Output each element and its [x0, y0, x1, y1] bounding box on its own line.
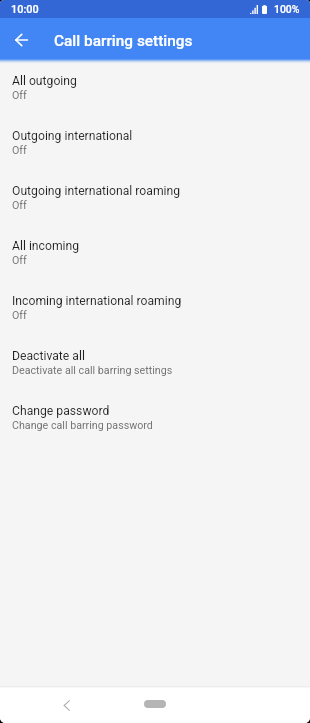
button[interactable]: Outgoing international roaming: [0, 170, 310, 225]
staticText: All incoming: [12, 239, 80, 253]
staticText: Deactivate all: [12, 349, 85, 363]
staticText: Deactivate all call barring settings: [12, 364, 173, 377]
button[interactable]: Home: [144, 700, 166, 708]
staticText: 100%: [274, 3, 300, 15]
staticText: Change call barring password: [12, 419, 153, 432]
button[interactable]: Outgoing international: [0, 115, 310, 170]
button[interactable]: All outgoing: [0, 60, 310, 115]
staticText: Off: [12, 199, 27, 212]
staticText: Incoming international roaming: [12, 294, 182, 308]
staticText: Off: [12, 309, 27, 322]
staticText: Change password: [12, 404, 110, 418]
staticText: 10:00: [11, 3, 39, 16]
staticText: Off: [12, 89, 27, 102]
staticText: Outgoing international roaming: [12, 184, 181, 198]
button[interactable]: Deactivate all: [0, 335, 310, 390]
button[interactable]: Incoming international roaming: [0, 280, 310, 335]
button[interactable]: All incoming: [0, 225, 310, 280]
staticText: Off: [12, 254, 27, 267]
button[interactable]: Back: [52, 690, 82, 720]
button[interactable]: Back: [1, 19, 42, 60]
staticText: Call barring settings: [54, 32, 193, 50]
button[interactable]: Change password: [0, 390, 310, 445]
staticText: Outgoing international: [12, 129, 133, 143]
staticText: Off: [12, 144, 27, 157]
staticText: All outgoing: [12, 74, 77, 88]
